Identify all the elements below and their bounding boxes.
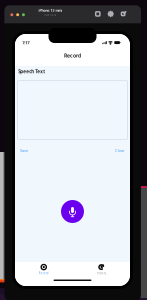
button[interactable]: Screenshot [121, 11, 127, 17]
staticText: Record [39, 271, 49, 275]
button[interactable]: Settings [108, 11, 114, 17]
button[interactable]: Home [95, 11, 101, 17]
staticText: Clear [115, 148, 125, 153]
staticText: Speech Text [18, 68, 45, 75]
button[interactable]: History [72, 263, 130, 276]
staticText: 7:17 [22, 40, 29, 45]
button[interactable]: Start recording [61, 200, 84, 223]
button[interactable]: Record [15, 263, 72, 276]
staticText: History [97, 271, 106, 275]
button[interactable]: Save [20, 147, 28, 153]
staticText: iPhone 13 mini [38, 8, 62, 13]
button[interactable]: Clear [115, 147, 125, 153]
staticText: Save [20, 148, 28, 153]
staticText: Record [64, 52, 81, 59]
staticText: iOS 15.4 [44, 13, 56, 16]
